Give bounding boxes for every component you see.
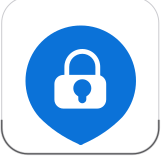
button[interactable]: Secure Location <box>0 0 163 162</box>
